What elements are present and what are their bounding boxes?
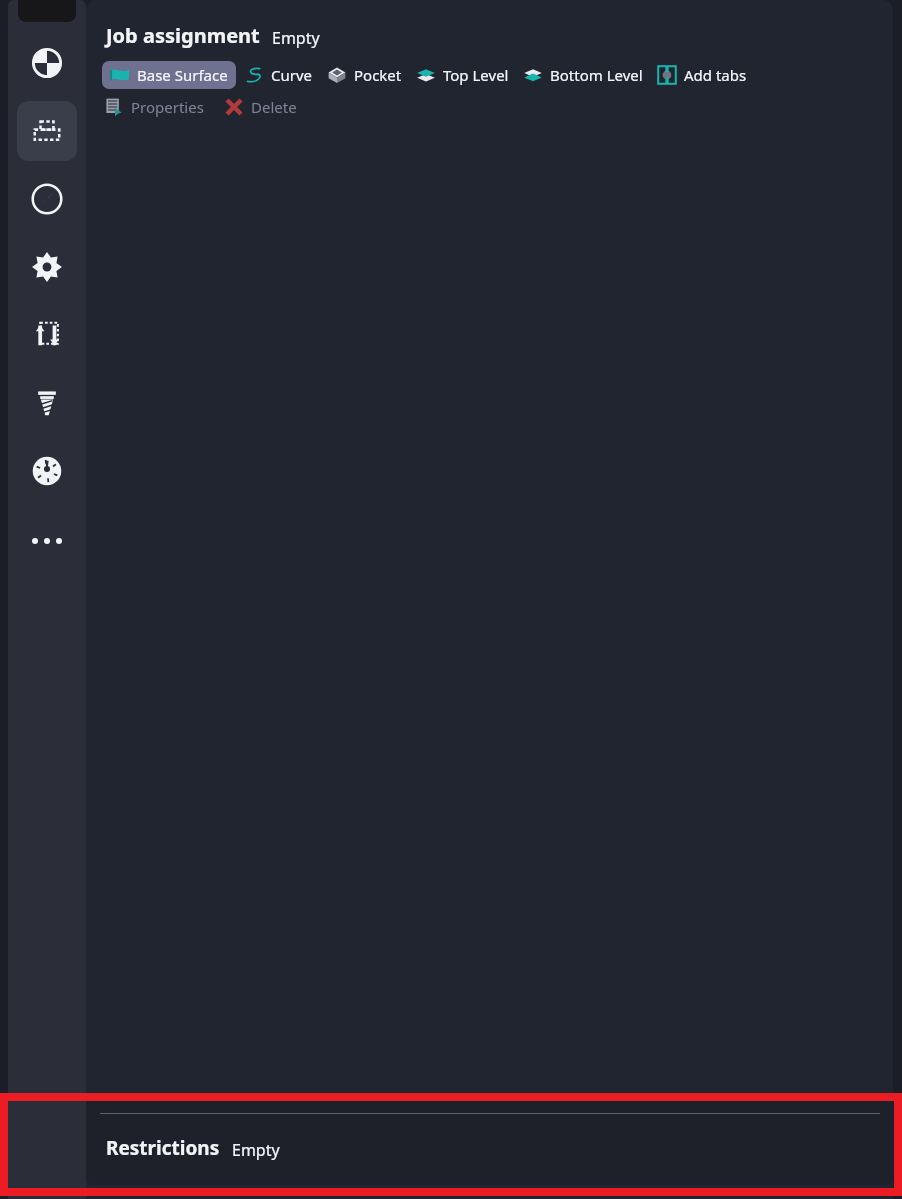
staticText: Bottom Level xyxy=(550,65,643,85)
staticText: Curve xyxy=(271,65,313,85)
button[interactable]: Settings xyxy=(17,237,77,297)
staticText: Pocket xyxy=(354,65,402,85)
button[interactable]: Quadrant view xyxy=(17,33,77,93)
button[interactable]: Bottom Level xyxy=(521,61,645,89)
button[interactable]: Base Surface xyxy=(102,61,236,89)
button[interactable]: Restrictions xyxy=(106,1135,280,1161)
button[interactable]: Curve xyxy=(242,61,315,89)
button[interactable]: Pocket xyxy=(325,61,404,89)
staticText: Base Surface xyxy=(137,65,228,85)
button[interactable]: Add tabs xyxy=(655,61,749,89)
button[interactable]: Orientation xyxy=(17,169,77,229)
button[interactable]: Surfaces xyxy=(17,101,77,161)
staticText: Job assignment xyxy=(106,22,260,49)
staticText: Add tabs xyxy=(684,65,747,85)
button[interactable]: Delete xyxy=(222,93,299,121)
button[interactable]: Top Level xyxy=(414,61,511,89)
button[interactable]: Move xyxy=(17,305,77,365)
staticText: Delete xyxy=(251,97,297,117)
button[interactable]: Drill xyxy=(17,373,77,433)
button[interactable]: Tool xyxy=(17,441,77,501)
staticText: Top Level xyxy=(443,65,509,85)
staticText: Empty xyxy=(272,27,320,49)
staticText: Restrictions xyxy=(106,1135,220,1161)
staticText: Empty xyxy=(232,1139,280,1161)
staticText: Properties xyxy=(131,97,204,117)
button[interactable]: More xyxy=(21,515,73,567)
button[interactable]: Properties xyxy=(102,93,206,121)
